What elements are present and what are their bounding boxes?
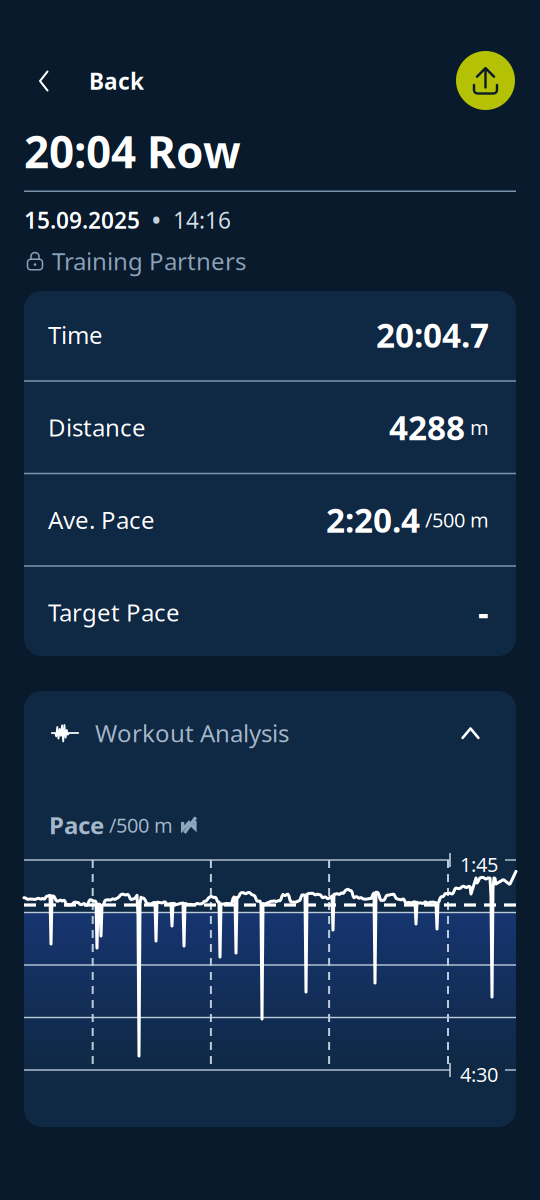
staticText: 20:04 Row [24,122,241,180]
staticText: Pace [49,809,104,841]
button[interactable]: Back [0,55,174,107]
staticText: /500 m [420,506,489,533]
staticText: • [140,205,173,235]
staticText: 4:30 [460,1061,498,1088]
staticText: Distance [48,411,146,443]
staticText: Workout Analysis [95,717,289,749]
staticText: Target Pace [48,596,180,628]
staticText: 20:04.7 [376,313,489,357]
button[interactable]: Workout Analysis [24,691,516,775]
button[interactable]: Share [456,51,515,110]
staticText: 14:16 [173,205,231,235]
staticText: Ave. Pace [48,504,155,536]
staticText: 2:20.4 [326,498,420,542]
staticText: 15.09.2025 [24,205,140,235]
staticText: - [478,590,489,634]
staticText: Time [48,319,103,351]
staticText: 1:45 [460,851,498,878]
staticText: /500 m [104,812,173,838]
staticText: 4288 [389,405,465,449]
staticText: m [465,414,489,441]
staticText: Back [89,66,144,96]
staticText: Training Partners [52,245,246,277]
